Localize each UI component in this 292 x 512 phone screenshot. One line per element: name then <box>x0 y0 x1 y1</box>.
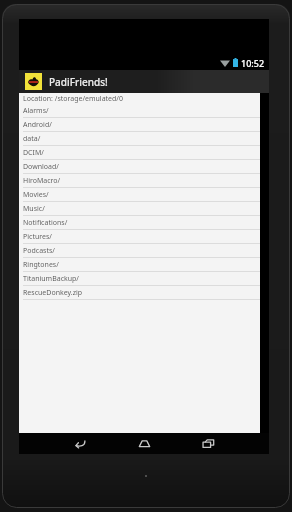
staticText: Podcasts/ <box>23 246 55 256</box>
staticText: Music/ <box>23 204 45 214</box>
button[interactable]: data/ <box>19 132 260 146</box>
staticText: Notifications/ <box>23 218 68 228</box>
staticText: Alarms/ <box>23 106 49 116</box>
staticText: Ringtones/ <box>23 260 59 270</box>
staticText: Pictures/ <box>23 232 52 242</box>
staticText: 10:52 <box>241 57 265 69</box>
button[interactable]: Back <box>67 433 93 454</box>
staticText: Download/ <box>23 162 59 172</box>
button[interactable]: Download/ <box>19 160 260 174</box>
staticText: RescueDonkey.zip <box>23 288 83 298</box>
button[interactable]: Music/ <box>19 202 260 216</box>
staticText: Movies/ <box>23 190 49 200</box>
button[interactable]: App icon <box>25 73 42 90</box>
button[interactable]: Ringtones/ <box>19 258 260 272</box>
staticText: Android/ <box>23 120 52 130</box>
button[interactable]: RescueDonkey.zip <box>19 286 260 300</box>
staticText: PadiFriends! <box>49 75 108 89</box>
button[interactable]: TitaniumBackup/ <box>19 272 260 286</box>
button[interactable]: Podcasts/ <box>19 244 260 258</box>
button[interactable]: Movies/ <box>19 188 260 202</box>
button[interactable]: Home <box>131 433 157 454</box>
staticText: DCIM/ <box>23 148 44 158</box>
staticText: data/ <box>23 134 41 144</box>
staticText: HiroMacro/ <box>23 176 61 186</box>
button[interactable]: Alarms/ <box>19 104 260 118</box>
staticText: TitaniumBackup/ <box>23 274 79 284</box>
staticText: Location: /storage/emulated/0 <box>23 94 123 104</box>
button[interactable]: Android/ <box>19 118 260 132</box>
button[interactable]: Notifications/ <box>19 216 260 230</box>
button[interactable]: HiroMacro/ <box>19 174 260 188</box>
button[interactable]: Pictures/ <box>19 230 260 244</box>
button[interactable]: DCIM/ <box>19 146 260 160</box>
button[interactable]: Recent apps <box>195 433 221 454</box>
